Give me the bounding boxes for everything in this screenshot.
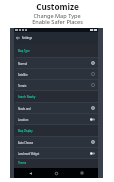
button[interactable]: Navigate up [14, 32, 22, 44]
staticText: Change Map Type [33, 12, 81, 20]
staticText: Auto Choose [18, 141, 34, 144]
staticText: Satellite [18, 73, 28, 76]
staticText: Landmark Widget [18, 152, 40, 155]
button[interactable]: Terrain [14, 80, 98, 90]
button[interactable]: Roads and [14, 103, 98, 113]
staticText: Map Display [18, 129, 33, 132]
button[interactable]: Back [20, 168, 40, 178]
staticText: Roads and [18, 107, 31, 110]
staticText: Map Type [18, 49, 30, 52]
button[interactable]: Home [46, 168, 66, 178]
staticText: Search Nearby [18, 95, 36, 98]
staticText: Settings [22, 36, 33, 40]
staticText: Enable Safer Places [32, 18, 83, 26]
staticText: Normal [18, 62, 27, 65]
staticText: Terrain [18, 84, 27, 87]
button[interactable]: Normal [14, 58, 98, 68]
button[interactable]: Satellite [14, 69, 98, 79]
staticText: Customize [36, 1, 79, 12]
button[interactable]: Landmark Widget [14, 148, 98, 158]
button[interactable]: Recent apps [72, 168, 92, 178]
button[interactable]: Location [14, 114, 98, 124]
staticText: Theme [18, 161, 27, 164]
button[interactable]: Auto Choose [14, 137, 98, 147]
staticText: Location [18, 118, 29, 121]
